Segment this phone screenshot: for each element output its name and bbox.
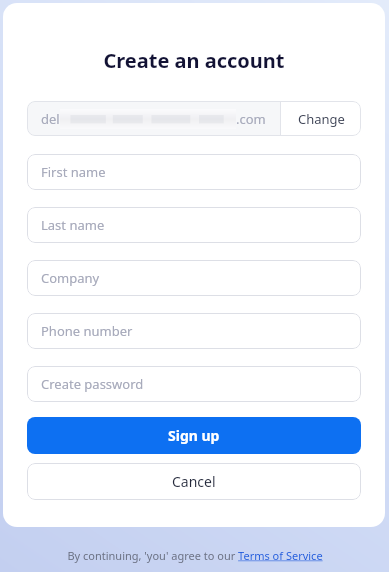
button[interactable]: Sign up xyxy=(27,417,361,454)
button[interactable]: First name xyxy=(27,154,361,190)
button[interactable]: Phone number xyxy=(27,313,361,349)
staticText: Last name xyxy=(41,216,105,234)
button[interactable]: Company xyxy=(27,260,361,296)
button[interactable]: Last name xyxy=(27,207,361,243)
staticText: First name xyxy=(41,163,106,181)
staticText: Cancel xyxy=(172,472,216,491)
staticText: Change xyxy=(298,110,345,128)
button[interactable]: Cancel xyxy=(27,463,361,500)
staticText: del xyxy=(41,110,60,128)
staticText: Company xyxy=(41,269,100,287)
button[interactable]: Change xyxy=(281,101,361,136)
button[interactable]: del xyxy=(27,101,280,136)
staticText: Create an account xyxy=(103,47,285,74)
button[interactable]: By continuing, 'you' agree to our Terms … xyxy=(67,548,323,563)
staticText: .com xyxy=(236,110,266,128)
staticText: Sign up xyxy=(168,426,220,445)
staticText: Create password xyxy=(41,375,144,393)
button[interactable]: Create password xyxy=(27,366,361,402)
staticText: Phone number xyxy=(41,322,133,340)
